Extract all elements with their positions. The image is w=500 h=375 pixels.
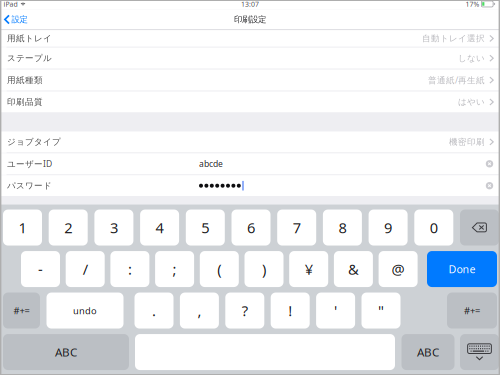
staticText: 機密印刷 (449, 136, 485, 147)
button[interactable]: ( (200, 251, 239, 287)
button[interactable]: undo (46, 292, 123, 328)
button[interactable]: 印刷品質 (0, 91, 500, 112)
staticText: 印刷設定 (234, 14, 266, 25)
staticText: ' (334, 301, 337, 321)
button[interactable]: 7 (277, 209, 316, 245)
staticText: undo (73, 304, 97, 317)
button[interactable]: 6 (231, 209, 270, 245)
staticText: 3 (110, 218, 118, 238)
staticText: 4 (156, 218, 164, 238)
button[interactable]: ¥ (289, 251, 328, 287)
staticText: 0 (430, 218, 438, 238)
button[interactable]: ) (244, 251, 283, 287)
staticText: 印刷品質 (7, 97, 43, 107)
button[interactable]: : (110, 251, 149, 287)
staticText: 2 (64, 218, 72, 238)
staticText: 用紙トレイ (7, 33, 52, 44)
button[interactable]: / (66, 251, 105, 287)
button[interactable]: 2 (49, 209, 88, 245)
button[interactable]: 0 (414, 209, 453, 245)
button[interactable]: 5 (186, 209, 225, 245)
button[interactable]: 1 (3, 209, 42, 245)
staticText: & (348, 259, 359, 279)
staticText: パスワード (7, 180, 52, 191)
staticText: ジョブタイプ (7, 136, 61, 147)
staticText: abcde (199, 158, 223, 170)
staticText: 自動トレイ選択 (422, 33, 485, 44)
staticText: ( (217, 259, 221, 279)
button[interactable]: 4 (140, 209, 179, 245)
staticText: #+= (464, 304, 480, 317)
staticText: ステープル (7, 53, 52, 64)
button[interactable]: . (134, 292, 173, 328)
staticText: iPad (4, 0, 18, 9)
staticText: ユーザーID (7, 158, 52, 170)
button[interactable]: Delete (460, 209, 499, 245)
button[interactable]: , (180, 292, 219, 328)
button[interactable]: @ (379, 251, 418, 287)
staticText: 普通紙/再生紙 (428, 74, 485, 86)
button[interactable]: #+= (447, 292, 497, 328)
staticText: ? (242, 301, 248, 321)
button[interactable]: Clear text (485, 181, 494, 190)
button[interactable]: ; (155, 251, 194, 287)
button[interactable]: ? (225, 292, 264, 328)
button[interactable]: ジョブタイプ (0, 131, 500, 152)
button[interactable]: ABC (3, 334, 129, 370)
staticText: ; (173, 259, 177, 279)
staticText: 1 (18, 218, 26, 238)
button[interactable]: - (21, 251, 60, 287)
button[interactable]: 用紙種類 (0, 70, 500, 90)
button[interactable]: Hide keyboard (460, 334, 499, 370)
button[interactable]: ! (271, 292, 310, 328)
staticText: はやい (458, 97, 485, 107)
button[interactable]: Clear text (485, 159, 494, 168)
button[interactable]: 3 (94, 209, 133, 245)
staticText: 7 (293, 218, 301, 238)
staticText: しない (458, 53, 485, 64)
staticText: 8 (338, 218, 346, 238)
staticText: 設定 (11, 14, 27, 25)
staticText: 17% (466, 0, 480, 9)
staticText: ) (262, 259, 266, 279)
staticText: Done (448, 262, 475, 276)
button[interactable]: 設定 (0, 9, 33, 29)
staticText: : (128, 259, 132, 279)
button[interactable]: 用紙トレイ (0, 30, 500, 47)
staticText: 13:07 (241, 0, 259, 9)
staticText: / (83, 259, 88, 279)
staticText: - (38, 259, 43, 279)
button[interactable]: ' (316, 292, 355, 328)
button[interactable]: ステープル (0, 48, 500, 69)
staticText: 9 (384, 218, 392, 238)
staticText: . (152, 301, 156, 321)
staticText: ! (288, 301, 292, 321)
staticText: " (378, 301, 384, 321)
staticText: 用紙種類 (7, 75, 43, 85)
button[interactable]: " (361, 292, 400, 328)
staticText: ¥ (305, 259, 313, 279)
staticText: @ (392, 259, 405, 279)
staticText: 6 (247, 218, 255, 238)
staticText: , (197, 301, 201, 321)
staticText: ABC (417, 344, 439, 360)
button[interactable]: 8 (323, 209, 362, 245)
button[interactable]: & (334, 251, 373, 287)
staticText: ABC (55, 344, 77, 360)
staticText: #+= (13, 304, 29, 317)
button[interactable]: Done (427, 251, 497, 287)
staticText: 5 (201, 218, 209, 238)
button[interactable]: 9 (369, 209, 408, 245)
button[interactable]: ABC (401, 334, 454, 370)
button[interactable]: #+= (3, 292, 40, 328)
